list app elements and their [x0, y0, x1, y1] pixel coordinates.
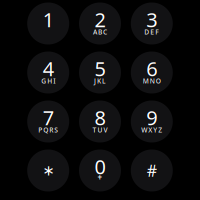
button[interactable]: star: [27, 149, 69, 191]
staticText: A B C: [93, 28, 107, 36]
staticText: 9: [146, 104, 157, 131]
button[interactable]: 9 WXYZ: [131, 100, 173, 142]
staticText: T U V: [92, 126, 107, 134]
staticText: P Q R S: [38, 126, 58, 134]
staticText: 4: [43, 55, 54, 82]
staticText: 2: [94, 6, 105, 33]
staticText: #: [147, 160, 157, 181]
button[interactable]: 4 GHI: [27, 51, 69, 93]
staticText: 6: [146, 55, 157, 82]
staticText: J K L: [94, 77, 106, 85]
button[interactable]: number sign: [131, 149, 173, 191]
button[interactable]: 7 PQRS: [27, 100, 69, 142]
staticText: W X Y Z: [141, 126, 162, 134]
staticText: 8: [94, 104, 105, 131]
button[interactable]: 3 DEF: [131, 2, 173, 44]
staticText: 0: [94, 153, 105, 180]
button[interactable]: 2 ABC: [79, 2, 121, 44]
staticText: 5: [94, 55, 105, 82]
staticText: G H I: [41, 77, 55, 85]
staticText: D E F: [144, 28, 159, 36]
button[interactable]: 1: [27, 2, 69, 44]
button[interactable]: 6 MNO: [131, 51, 173, 93]
button[interactable]: 0 +: [79, 149, 121, 191]
staticText: 1: [43, 6, 54, 33]
staticText: ∗: [42, 162, 54, 179]
staticText: 7: [43, 104, 54, 131]
staticText: +: [97, 172, 102, 183]
staticText: M N O: [143, 77, 161, 85]
button[interactable]: 8 TUV: [79, 100, 121, 142]
staticText: 3: [146, 6, 157, 33]
button[interactable]: 5 JKL: [79, 51, 121, 93]
